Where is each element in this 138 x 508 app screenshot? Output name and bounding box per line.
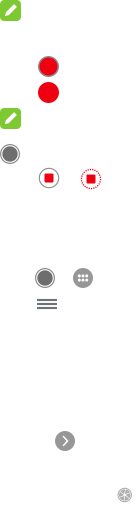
button[interactable]: Compose [0, 108, 21, 129]
button[interactable]: Compose [0, 0, 21, 21]
button[interactable]: More options [73, 268, 93, 288]
button[interactable]: Stop [39, 168, 59, 188]
button[interactable]: Record [38, 56, 59, 77]
button[interactable]: Camera [117, 488, 132, 502]
button[interactable]: Menu [37, 299, 57, 309]
button[interactable]: Record inactive [0, 144, 20, 164]
button[interactable]: Stop recording [80, 168, 101, 189]
button[interactable]: Record [35, 268, 55, 288]
button[interactable]: Next [55, 431, 75, 451]
button[interactable]: Record [38, 82, 59, 103]
